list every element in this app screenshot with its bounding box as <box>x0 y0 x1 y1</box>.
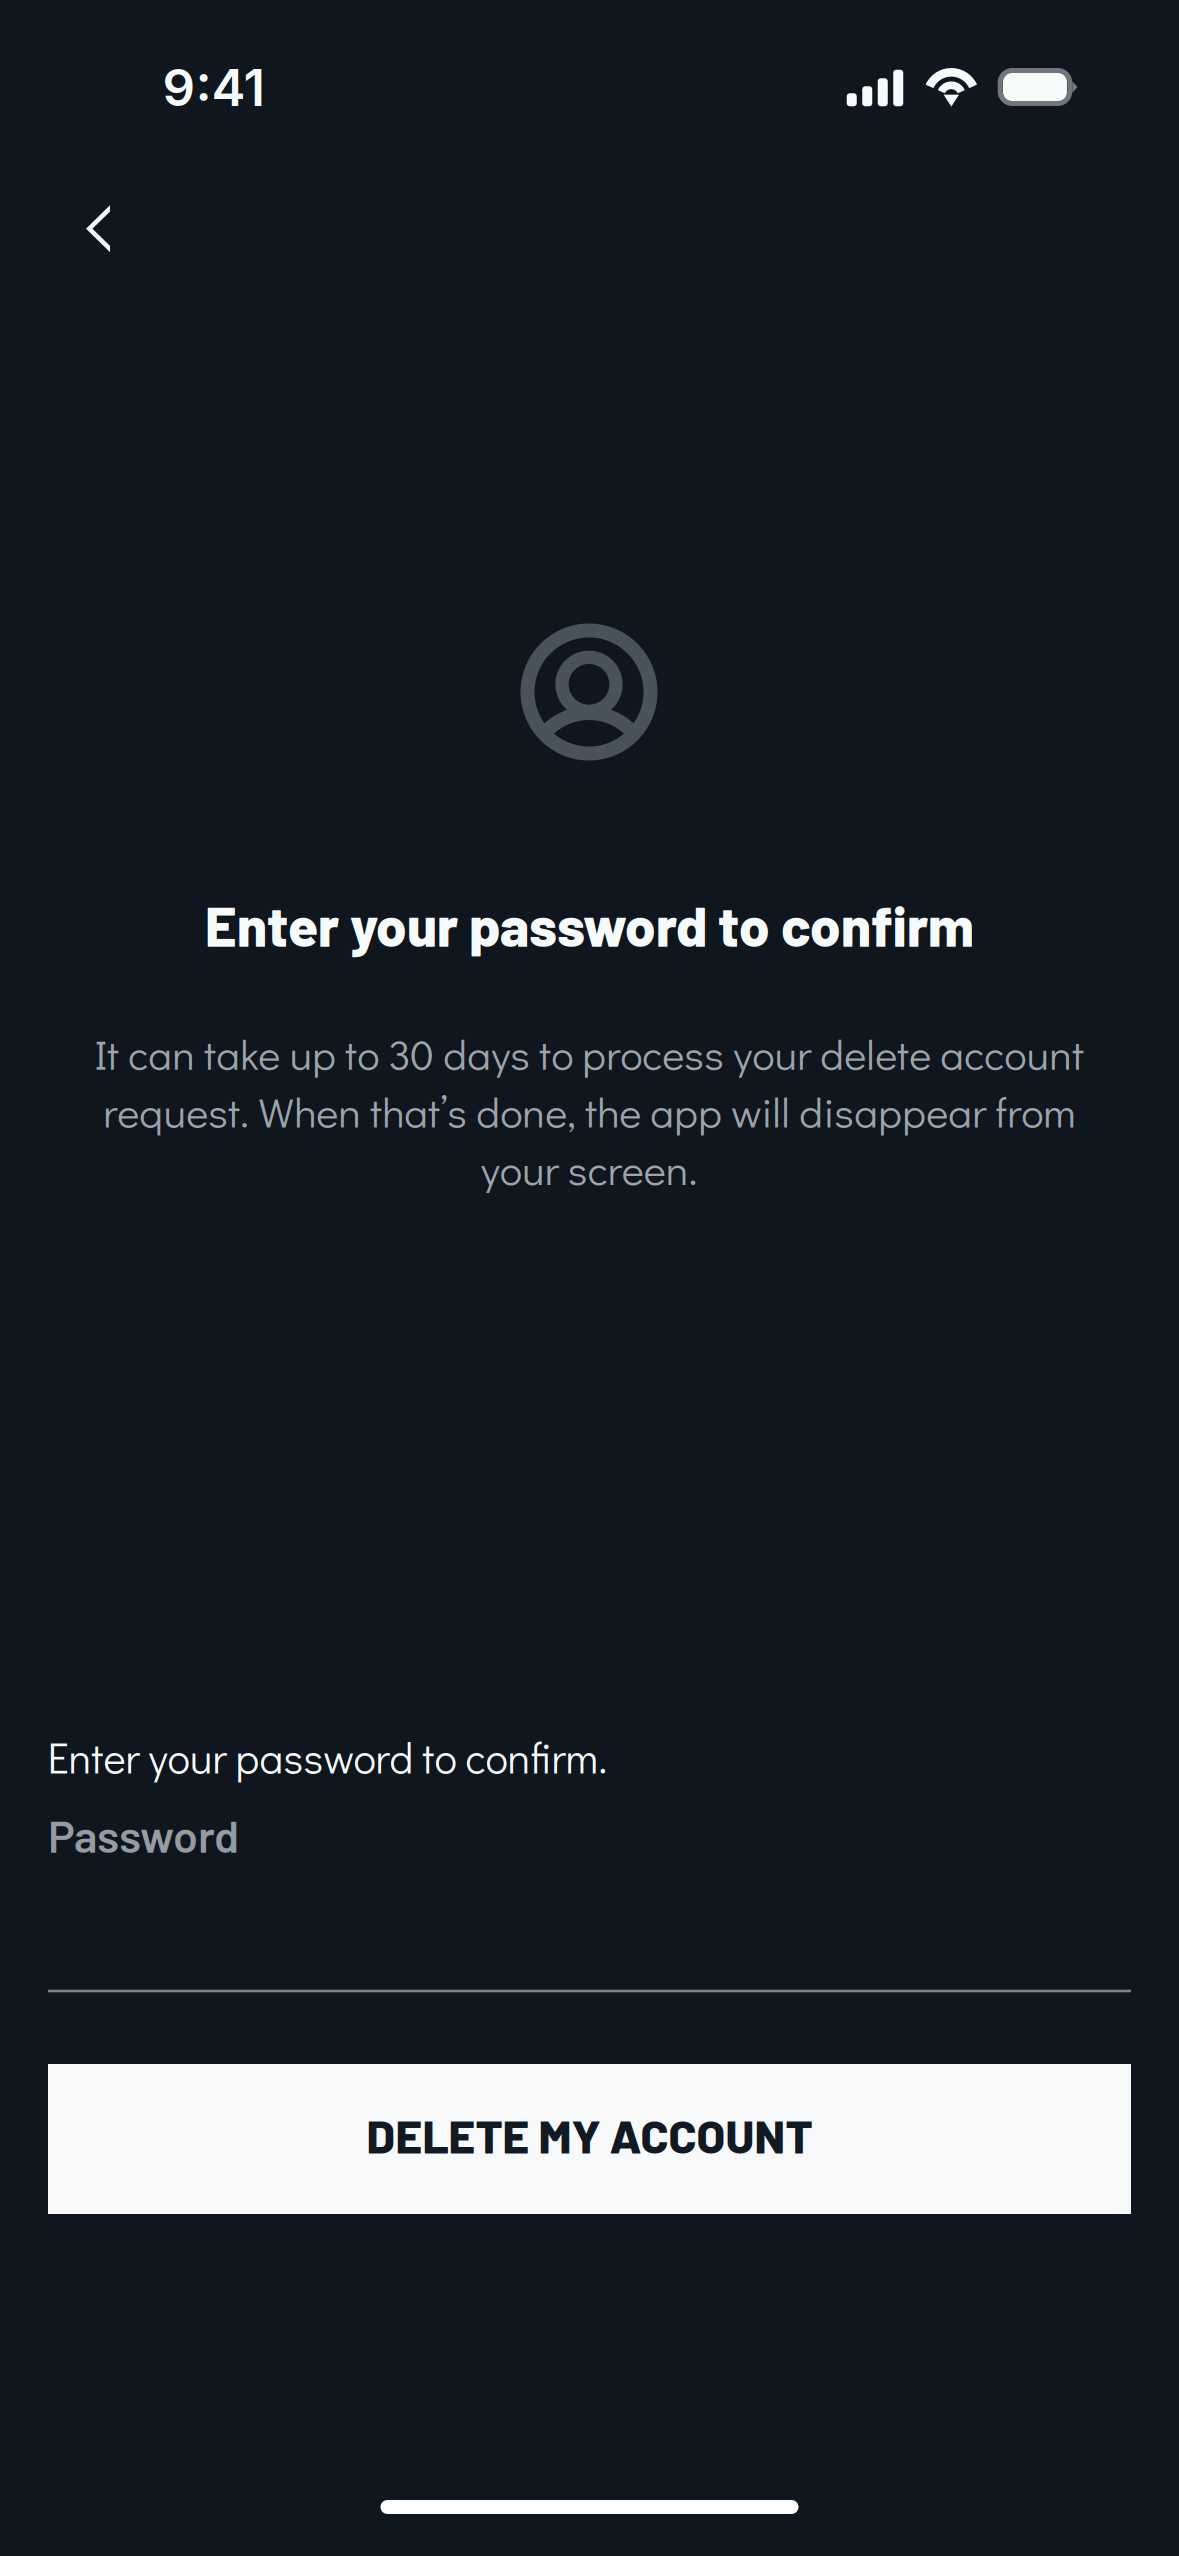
staticText: Enter your password to confirm <box>205 892 974 958</box>
button[interactable]: Password <box>48 1808 1131 1992</box>
staticText: DELETE MY ACCOUNT <box>366 2107 812 2163</box>
button[interactable]: DELETE MY ACCOUNT <box>48 2064 1131 2214</box>
button[interactable]: Back <box>50 181 146 277</box>
staticText: It can take up to 30 days to process you… <box>94 1026 1084 1196</box>
staticText: Enter your password to confirm. <box>47 1729 607 1785</box>
staticText: Password <box>48 1808 239 1862</box>
staticText: 9:41 <box>162 57 265 118</box>
